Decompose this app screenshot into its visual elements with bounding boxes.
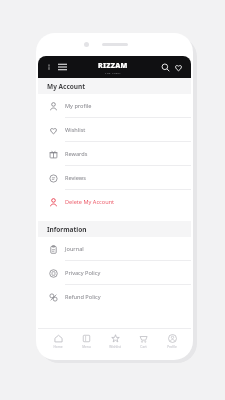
button[interactable]: Privacy Policy xyxy=(38,261,191,285)
staticText: Journal xyxy=(65,245,84,253)
button[interactable]: Reviews xyxy=(38,166,191,190)
staticText: Privacy Policy xyxy=(65,269,101,277)
staticText: RIZZAM xyxy=(98,61,128,71)
button[interactable]: Profile xyxy=(159,328,185,354)
staticText: THE LABEL xyxy=(105,71,122,74)
staticText: Rewards xyxy=(65,150,88,158)
button[interactable]: More options xyxy=(45,59,53,75)
staticText: Reviews xyxy=(65,174,86,182)
button[interactable]: Wishlist xyxy=(102,328,128,354)
staticText: Wishlist xyxy=(65,126,86,134)
button[interactable]: Refund Policy xyxy=(38,285,191,309)
staticText: Refund Policy xyxy=(65,293,101,301)
staticText: Delete My Account xyxy=(65,198,115,206)
staticText: Home xyxy=(53,345,63,349)
staticText: Wishlist xyxy=(109,345,121,349)
button[interactable]: Menu xyxy=(56,59,68,75)
staticText: Profile xyxy=(167,345,177,349)
staticText: Cart xyxy=(140,345,147,349)
staticText: Information xyxy=(47,225,87,234)
button[interactable]: Wishlist xyxy=(38,118,191,142)
staticText: My profile xyxy=(65,102,92,110)
button[interactable]: My profile xyxy=(38,94,191,118)
staticText: Menu xyxy=(82,345,91,349)
button[interactable]: Wishlist xyxy=(172,59,184,75)
button[interactable]: Cart xyxy=(130,328,156,354)
button[interactable]: Home xyxy=(45,328,71,354)
button[interactable]: Rewards xyxy=(38,142,191,166)
staticText: My Account xyxy=(47,82,86,91)
button[interactable]: Delete My Account xyxy=(38,190,191,214)
button[interactable]: Journal xyxy=(38,237,191,261)
button[interactable]: Search xyxy=(159,59,171,75)
button[interactable]: Menu xyxy=(73,328,99,354)
